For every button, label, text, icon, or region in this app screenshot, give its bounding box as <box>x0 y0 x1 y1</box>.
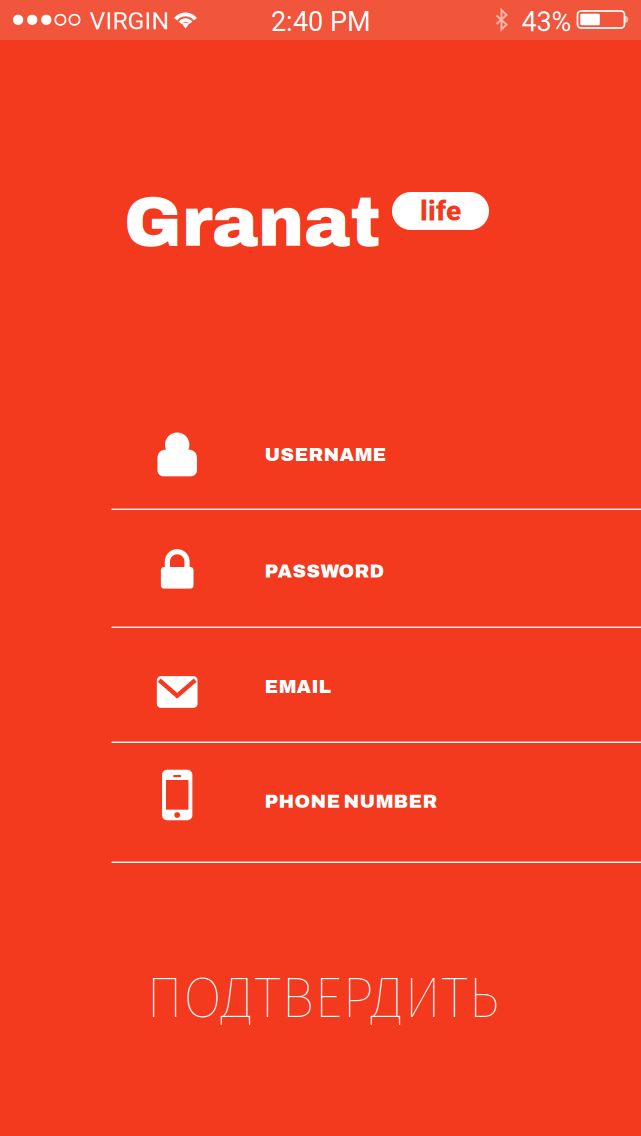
staticText: 43% <box>521 6 571 38</box>
button[interactable]: PHONE NUMBER <box>0 743 641 863</box>
button[interactable]: ПОДТВЕРДИТЬ <box>146 968 526 1028</box>
staticText: PHONE NUMBER <box>264 791 437 812</box>
staticText: USERNAME <box>264 445 386 465</box>
button[interactable]: PASSWORD <box>0 510 641 628</box>
button[interactable]: EMAIL <box>0 628 641 743</box>
staticText: EMAIL <box>264 677 331 697</box>
staticText: Granat <box>124 185 381 260</box>
staticText: life <box>420 195 461 227</box>
staticText: 2:40 PM <box>271 6 371 38</box>
staticText: ПОДТВЕРДИТЬ <box>146 964 499 1032</box>
staticText: PASSWORD <box>264 561 384 582</box>
staticText: VIRGIN <box>89 6 169 35</box>
button[interactable]: USERNAME <box>0 392 641 510</box>
